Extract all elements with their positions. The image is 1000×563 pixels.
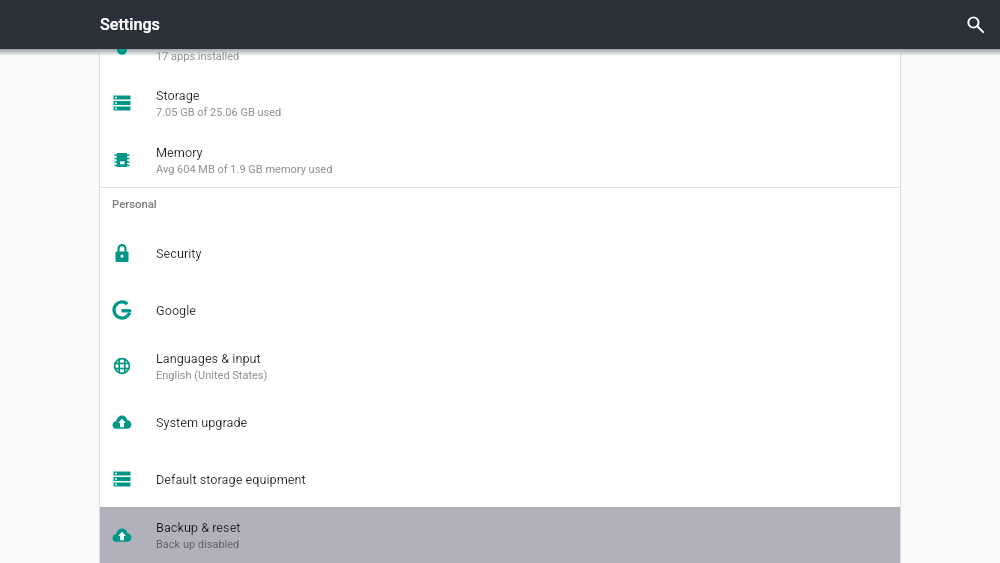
button[interactable]: Languages & input — [100, 338, 900, 394]
staticText: 7.05 GB of 25.06 GB used — [156, 106, 282, 119]
button[interactable]: Default storage equipment — [100, 451, 900, 507]
button[interactable]: Security — [100, 225, 900, 281]
staticText: System upgrade — [156, 415, 248, 430]
button[interactable]: Search — [953, 2, 997, 46]
staticText: Languages & input — [156, 351, 261, 366]
button[interactable]: Backup & reset — [100, 507, 900, 563]
staticText: Storage — [156, 88, 200, 103]
staticText: Google — [156, 303, 197, 318]
staticText: English (United States) — [156, 369, 268, 382]
staticText: Default storage equipment — [156, 472, 306, 487]
staticText: Settings — [100, 15, 160, 34]
staticText: 17 apps installed — [156, 50, 240, 63]
staticText: Avg 604 MB of 1.9 GB memory used — [156, 163, 333, 176]
button[interactable]: Apps — [100, 19, 900, 75]
button[interactable]: Memory — [100, 132, 900, 188]
staticText: Back up disabled — [156, 538, 240, 551]
staticText: Backup & reset — [156, 520, 241, 535]
staticText: Security — [156, 246, 202, 261]
staticText: Memory — [156, 145, 203, 160]
staticText: Personal — [112, 198, 157, 211]
button[interactable]: System upgrade — [100, 394, 900, 450]
button[interactable]: Google — [100, 282, 900, 338]
button[interactable]: Storage — [100, 75, 900, 131]
